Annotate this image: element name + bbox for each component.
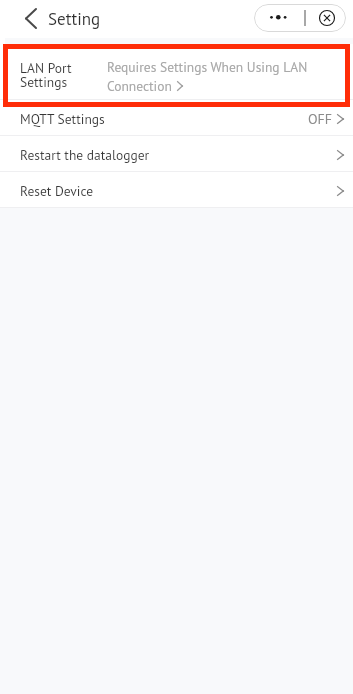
button[interactable]: Reset Device [0, 172, 353, 207]
button[interactable]: MQTT Settings [0, 100, 353, 135]
button[interactable]: More options [254, 4, 304, 32]
button[interactable]: Restart the datalogger [0, 136, 353, 171]
button[interactable]: LAN Port Settings [0, 44, 353, 99]
staticText: Reset Device [20, 182, 94, 199]
button[interactable]: Close [305, 4, 346, 32]
staticText: Restart the datalogger [20, 146, 150, 163]
staticText: Connection [107, 77, 172, 94]
button[interactable]: Back [19, 7, 43, 31]
staticText: MQTT Settings [20, 110, 105, 127]
staticText: Setting [48, 8, 101, 30]
staticText: OFF [308, 110, 333, 128]
staticText: LAN Port Settings [20, 59, 72, 91]
staticText: Requires Settings When Using LAN [107, 58, 308, 75]
